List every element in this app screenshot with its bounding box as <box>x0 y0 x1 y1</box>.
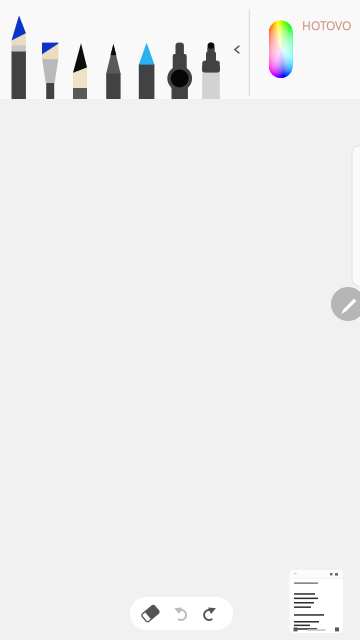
button[interactable]: Graphite pencil <box>0 0 360 640</box>
button[interactable]: Colour sampler <box>0 0 360 640</box>
button[interactable]: Highlighter <box>0 0 360 640</box>
button[interactable]: Crayon <box>0 0 360 640</box>
staticText: HOTOVO <box>302 17 351 33</box>
button[interactable]: Pen <box>0 0 360 640</box>
button[interactable]: Page thumbnail <box>0 0 360 640</box>
button[interactable]: Colour <box>0 0 360 640</box>
button[interactable]: Eraser <box>0 0 360 640</box>
button[interactable]: Show tools <box>0 0 360 640</box>
button[interactable]: Marker <box>0 0 360 640</box>
button[interactable]: Collapse tools <box>0 0 360 640</box>
button[interactable]: Redo <box>0 0 360 640</box>
button[interactable]: HOTOVO <box>296 14 356 36</box>
button[interactable]: Undo <box>0 0 360 640</box>
button[interactable]: Pencil <box>0 0 360 640</box>
